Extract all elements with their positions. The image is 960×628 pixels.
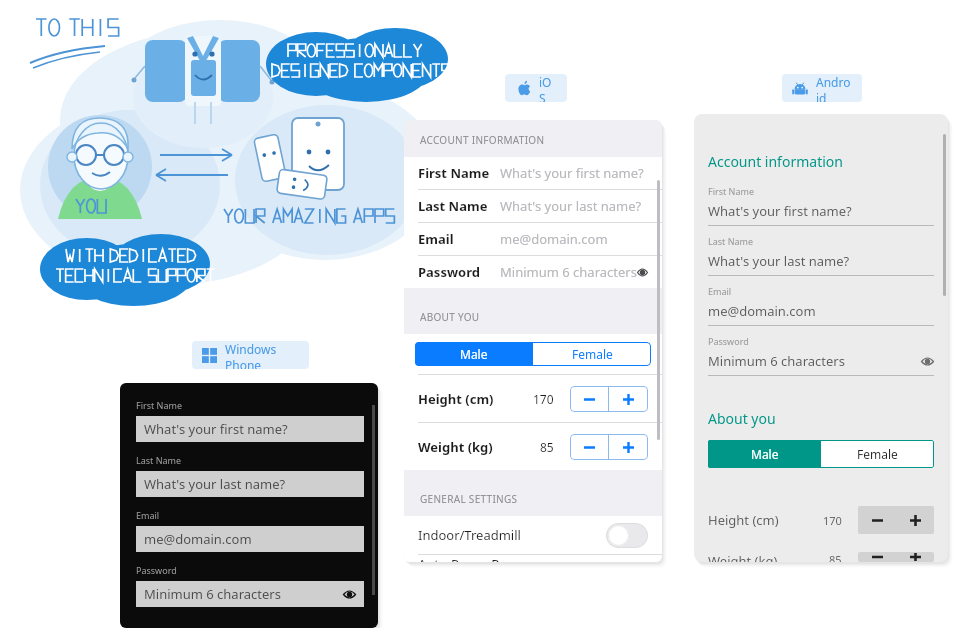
staticText: First Name (708, 185, 754, 197)
staticText: What's your first name? (500, 164, 644, 182)
button[interactable]: Android (782, 74, 862, 102)
staticText: 170 (823, 513, 842, 528)
button[interactable]: Decrease Height (cm) (858, 506, 896, 534)
staticText: What's your last name? (144, 475, 286, 493)
staticText: Minimum 6 characters (708, 352, 845, 370)
button[interactable]: Last Name (404, 190, 662, 222)
staticText: First Name (418, 164, 490, 182)
staticText: 170 (533, 391, 554, 407)
staticText: About you (708, 409, 776, 428)
staticText: 85 (540, 439, 554, 455)
staticText: Weight (kg) (708, 552, 778, 562)
button[interactable]: Last Name (136, 454, 364, 509)
button[interactable]: Increase Weight (kg) (896, 552, 934, 562)
button[interactable]: iOS (505, 74, 567, 102)
button[interactable]: Decrease Weight (kg) (570, 434, 608, 460)
staticText: ACCOUNT INFORMATION (420, 133, 545, 147)
button[interactable]: Password (404, 256, 662, 288)
staticText: Minimum 6 characters (144, 585, 281, 603)
staticText: Height (cm) (418, 390, 494, 408)
button[interactable]: First Name (136, 399, 364, 454)
staticText: Minimum 6 characters (500, 263, 637, 281)
button[interactable]: First Name (708, 185, 934, 235)
staticText: Indoor/Treadmill (418, 526, 521, 544)
staticText: Password (136, 564, 177, 576)
button[interactable]: Email (708, 285, 934, 335)
staticText: 85 (829, 552, 842, 562)
staticText: Android (816, 74, 852, 102)
button[interactable]: Email (136, 509, 364, 564)
button[interactable]: Windows Phone (192, 341, 309, 369)
staticText: GENERAL SETTINGS (420, 492, 518, 506)
button[interactable]: Decrease Weight (kg) (858, 552, 896, 562)
staticText: Account information (708, 152, 843, 171)
staticText: Weight (kg) (418, 438, 493, 456)
staticText: Last Name (136, 454, 182, 466)
button[interactable]: Last Name (708, 235, 934, 285)
button[interactable]: Password (136, 564, 364, 619)
button[interactable]: Female (533, 342, 651, 366)
staticText: Windows Phone (225, 341, 299, 369)
button[interactable]: Male (708, 440, 821, 468)
staticText: me@domain.com (500, 230, 608, 248)
staticText: Female (572, 346, 613, 362)
button[interactable]: Female (821, 440, 934, 468)
staticText: me@domain.com (708, 302, 816, 320)
button[interactable]: Email (404, 223, 662, 255)
button[interactable]: Increase Weight (kg) (609, 434, 648, 460)
staticText: Last Name (708, 235, 754, 247)
staticText: Email (136, 509, 160, 521)
staticText: Auto-Pause Run (418, 555, 516, 562)
staticText: What's your first name? (144, 420, 288, 438)
staticText: Last Name (418, 197, 488, 215)
staticText: What's your first name? (708, 202, 852, 220)
button[interactable]: Increase Height (cm) (609, 386, 648, 412)
staticText: Height (cm) (708, 511, 779, 529)
staticText: Password (418, 263, 480, 281)
staticText: Female (857, 446, 898, 462)
button[interactable]: Indoor/Treadmill toggle (606, 523, 648, 548)
button[interactable]: Increase Height (cm) (896, 506, 934, 534)
staticText: What's your last name? (708, 252, 850, 270)
button[interactable]: Password (708, 335, 934, 385)
button[interactable]: Indoor/Treadmill (404, 516, 662, 554)
staticText: First Name (136, 399, 182, 411)
staticText: Password (708, 335, 749, 347)
button[interactable]: Male (415, 342, 533, 366)
staticText: iOS (539, 74, 557, 102)
staticText: Male (751, 446, 779, 462)
button[interactable]: First Name (404, 157, 662, 189)
staticText: Email (708, 285, 732, 297)
staticText: What's your last name? (500, 197, 642, 215)
staticText: Male (460, 346, 488, 362)
button[interactable]: Auto-Pause Run (404, 555, 662, 562)
button[interactable]: Decrease Height (cm) (570, 386, 608, 412)
staticText: Email (418, 230, 454, 248)
staticText: ABOUT YOU (420, 310, 480, 324)
staticText: me@domain.com (144, 530, 252, 548)
